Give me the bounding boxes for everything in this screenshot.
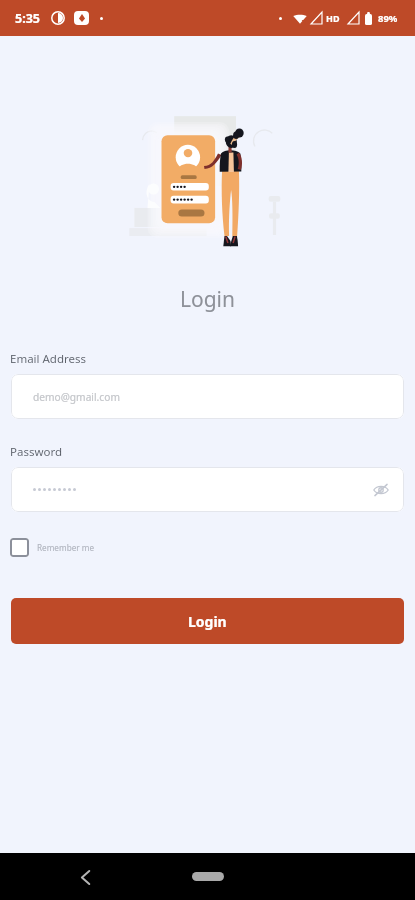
button[interactable]: Toggle password visibility <box>373 482 389 498</box>
staticText: Login <box>188 612 227 631</box>
staticText: 89% <box>378 12 398 25</box>
staticText: Login <box>0 285 415 314</box>
staticText: 5:35 <box>15 10 40 27</box>
button[interactable]: Remember me <box>10 538 95 557</box>
button[interactable]: Home <box>192 872 224 881</box>
staticText: Email Address <box>10 351 87 367</box>
button[interactable]: Login <box>11 598 404 644</box>
button[interactable]: demo@gmail.com <box>11 374 404 419</box>
staticText: Remember me <box>37 542 95 553</box>
button[interactable]: Back <box>70 862 100 892</box>
button[interactable]: Toggle password visibility <box>11 467 404 512</box>
staticText: demo@gmail.com <box>33 390 120 404</box>
staticText: HD <box>326 12 340 24</box>
staticText: Password <box>10 444 63 460</box>
